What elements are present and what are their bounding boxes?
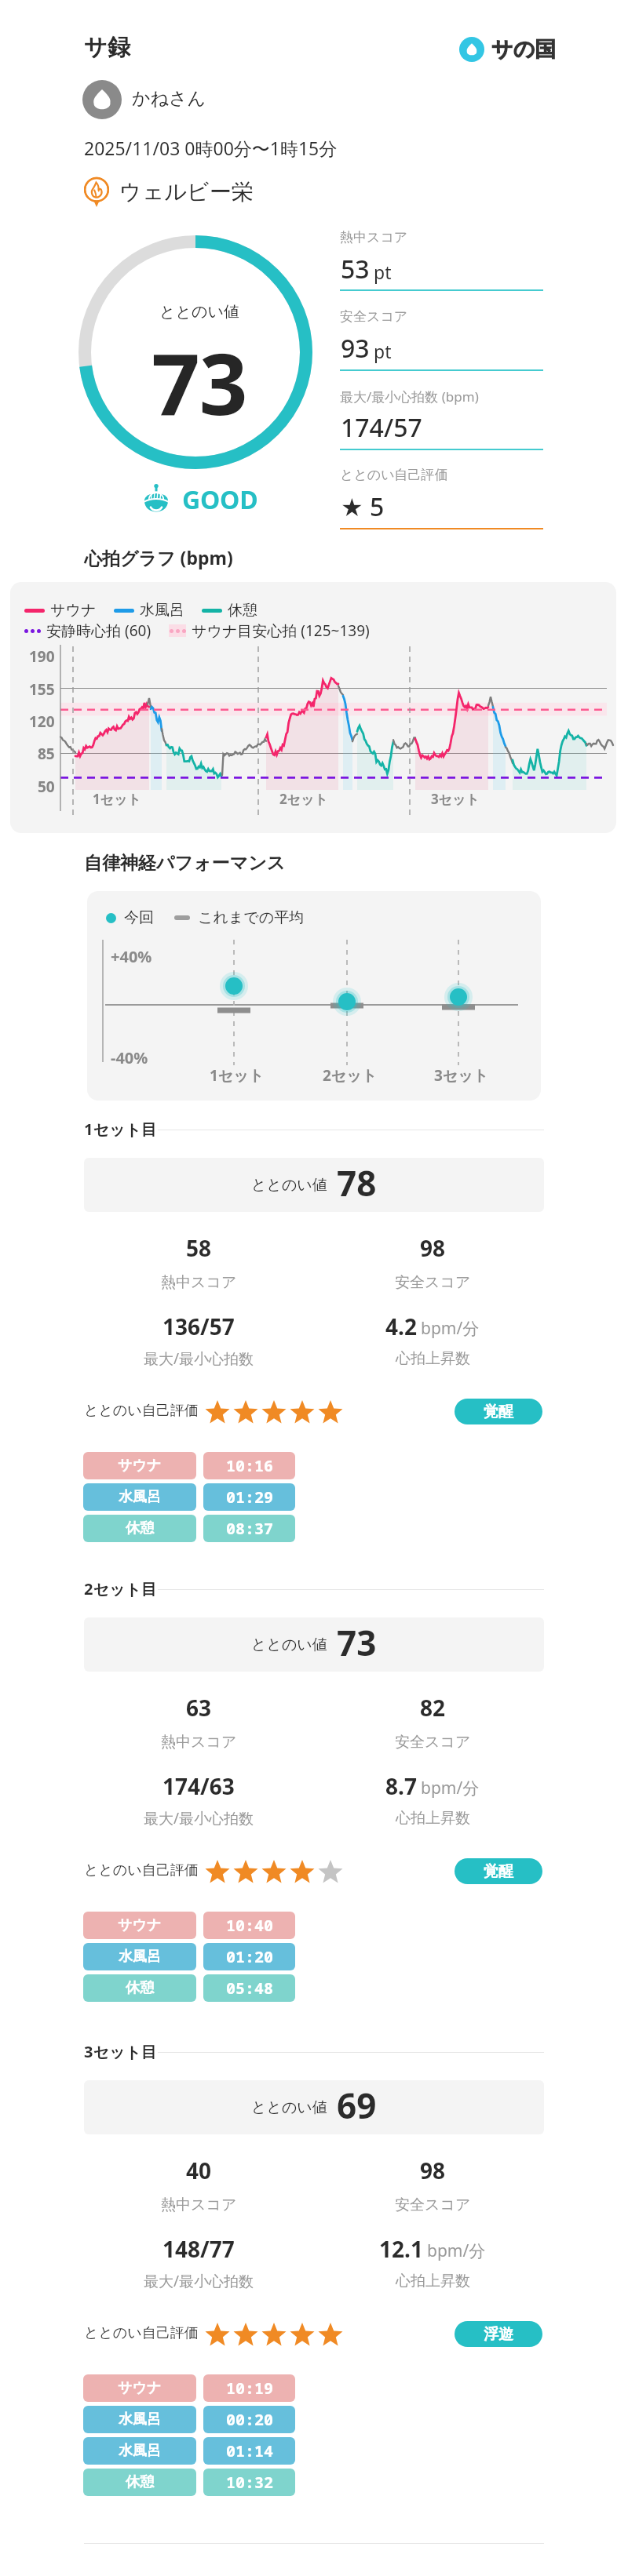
staticText: 熱中スコア [161, 1733, 237, 1752]
staticText: 3セット [431, 790, 480, 808]
staticText: 水風呂 [119, 2442, 161, 2460]
staticText: pt [374, 260, 392, 284]
staticText: 熱中スコア [161, 2196, 237, 2214]
button[interactable]: サの国 [459, 36, 557, 63]
staticText: bpm/分 [421, 1317, 480, 1340]
staticText: 熱中スコア [340, 229, 408, 246]
staticText: 12.1 [379, 2234, 423, 2264]
staticText: 10:40 [226, 1915, 273, 1936]
staticText: 熱中スコア [161, 1273, 237, 1292]
staticText: 最大/最小心拍数 [144, 1808, 254, 1828]
button[interactable]: GOOD [144, 482, 258, 516]
staticText: 00:20 [226, 2409, 273, 2430]
staticText: 1セット [93, 790, 141, 808]
staticText: サウナ [118, 1916, 162, 1934]
staticText: 水風呂 [119, 2410, 161, 2429]
staticText: bpm/分 [427, 2239, 486, 2262]
staticText: 10:19 [226, 2378, 273, 2399]
staticText: 174/63 [162, 1771, 235, 1801]
staticText: pt [374, 339, 392, 363]
staticText: 85 [38, 744, 55, 764]
staticText: ウェルビー栄 [119, 178, 254, 206]
staticText: 安全スコア [395, 1273, 471, 1292]
staticText: サウナ [118, 1457, 162, 1475]
staticText: 82 [420, 1693, 446, 1723]
staticText: 覚醒 [484, 1403, 513, 1421]
staticText: 136/57 [162, 1312, 235, 1341]
staticText: 最大/最小心拍数 (bpm) [340, 387, 479, 406]
staticText: サウナ [50, 601, 97, 620]
staticText: ととのい値 [251, 2098, 327, 2117]
staticText: 98 [420, 1233, 446, 1263]
staticText: 190 [29, 646, 55, 667]
staticText: 休憩 [126, 2473, 154, 2491]
staticText: GOOD [182, 482, 258, 517]
staticText: -40% [111, 1047, 148, 1068]
staticText: ととのい自己評価 [340, 467, 448, 483]
staticText: 50 [38, 777, 55, 797]
button[interactable]: 覚醒 [455, 1858, 542, 1884]
staticText: 10:32 [226, 2472, 273, 2493]
staticText: 1セット目 [84, 1119, 157, 1140]
staticText: 01:29 [226, 1486, 273, 1508]
staticText: 4.2 [385, 1312, 417, 1341]
staticText: 水風呂 [119, 1488, 161, 1506]
staticText: サウナ目安心拍 (125~139) [192, 620, 370, 641]
staticText: 08:37 [226, 1518, 273, 1539]
staticText: 最大/最小心拍数 [144, 2271, 254, 2291]
staticText: 01:14 [226, 2440, 273, 2461]
staticText: 1セット [210, 1065, 265, 1086]
button[interactable]: 覚醒 [455, 1399, 542, 1424]
staticText: 73 [152, 325, 247, 419]
staticText: 今回 [124, 908, 154, 927]
staticText: ととのい自己評価 [84, 2324, 199, 2342]
staticText: bpm/分 [421, 1777, 480, 1799]
staticText: 58 [186, 1233, 212, 1263]
staticText: 覚醒 [484, 1862, 513, 1881]
staticText: 78 [337, 1159, 377, 1206]
staticText: サウナ [118, 2379, 162, 2397]
staticText: かねさん [132, 87, 206, 110]
staticText: 安全スコア [395, 2196, 471, 2214]
staticText: 73 [337, 1619, 377, 1666]
staticText: 40 [186, 2156, 212, 2185]
staticText: 05:48 [226, 1977, 273, 1999]
staticText: 浮遊 [484, 2325, 513, 2344]
staticText: 安静時心拍 (60) [46, 620, 152, 641]
staticText: 最大/最小心拍数 [144, 1348, 254, 1369]
staticText: 93 [341, 331, 370, 366]
staticText: これまでの平均 [198, 908, 305, 927]
staticText: ととのい値 [251, 1635, 327, 1654]
staticText: 01:20 [226, 1946, 273, 1967]
staticText: 自律神経パフォーマンス [84, 852, 286, 875]
staticText: 8.7 [385, 1771, 417, 1801]
staticText: 3セット [434, 1065, 489, 1086]
staticText: 心拍グラフ (bpm) [84, 545, 233, 569]
staticText: 98 [420, 2156, 446, 2185]
staticText: 水風呂 [119, 1948, 161, 1966]
staticText: 安全スコア [395, 1733, 471, 1752]
staticText: 53 [341, 252, 370, 286]
staticText: 10:16 [226, 1455, 273, 1476]
staticText: 休憩 [228, 601, 257, 620]
button[interactable]: 浮遊 [455, 2321, 542, 2347]
staticText: 148/77 [162, 2234, 235, 2264]
staticText: サ録 [84, 33, 130, 62]
staticText: 155 [29, 679, 55, 700]
staticText: 2セット目 [84, 1578, 157, 1599]
staticText: 2セット [323, 1065, 378, 1086]
staticText: ととのい値 [159, 302, 239, 322]
staticText: 休憩 [126, 1979, 154, 1997]
staticText: 63 [186, 1693, 212, 1723]
staticText: 安全スコア [340, 308, 408, 325]
staticText: ととのい自己評価 [84, 1861, 199, 1879]
staticText: 2025/11/03 0時00分〜1時15分 [84, 136, 338, 160]
staticText: 心拍上昇数 [396, 2272, 470, 2290]
staticText: ととのい値 [251, 1176, 327, 1195]
staticText: サの国 [491, 36, 557, 63]
staticText: 120 [29, 711, 55, 732]
staticText: 水風呂 [140, 601, 184, 620]
staticText: 3セット目 [84, 2041, 157, 2062]
staticText: 69 [337, 2082, 377, 2129]
staticText: 174/57 [341, 410, 422, 445]
